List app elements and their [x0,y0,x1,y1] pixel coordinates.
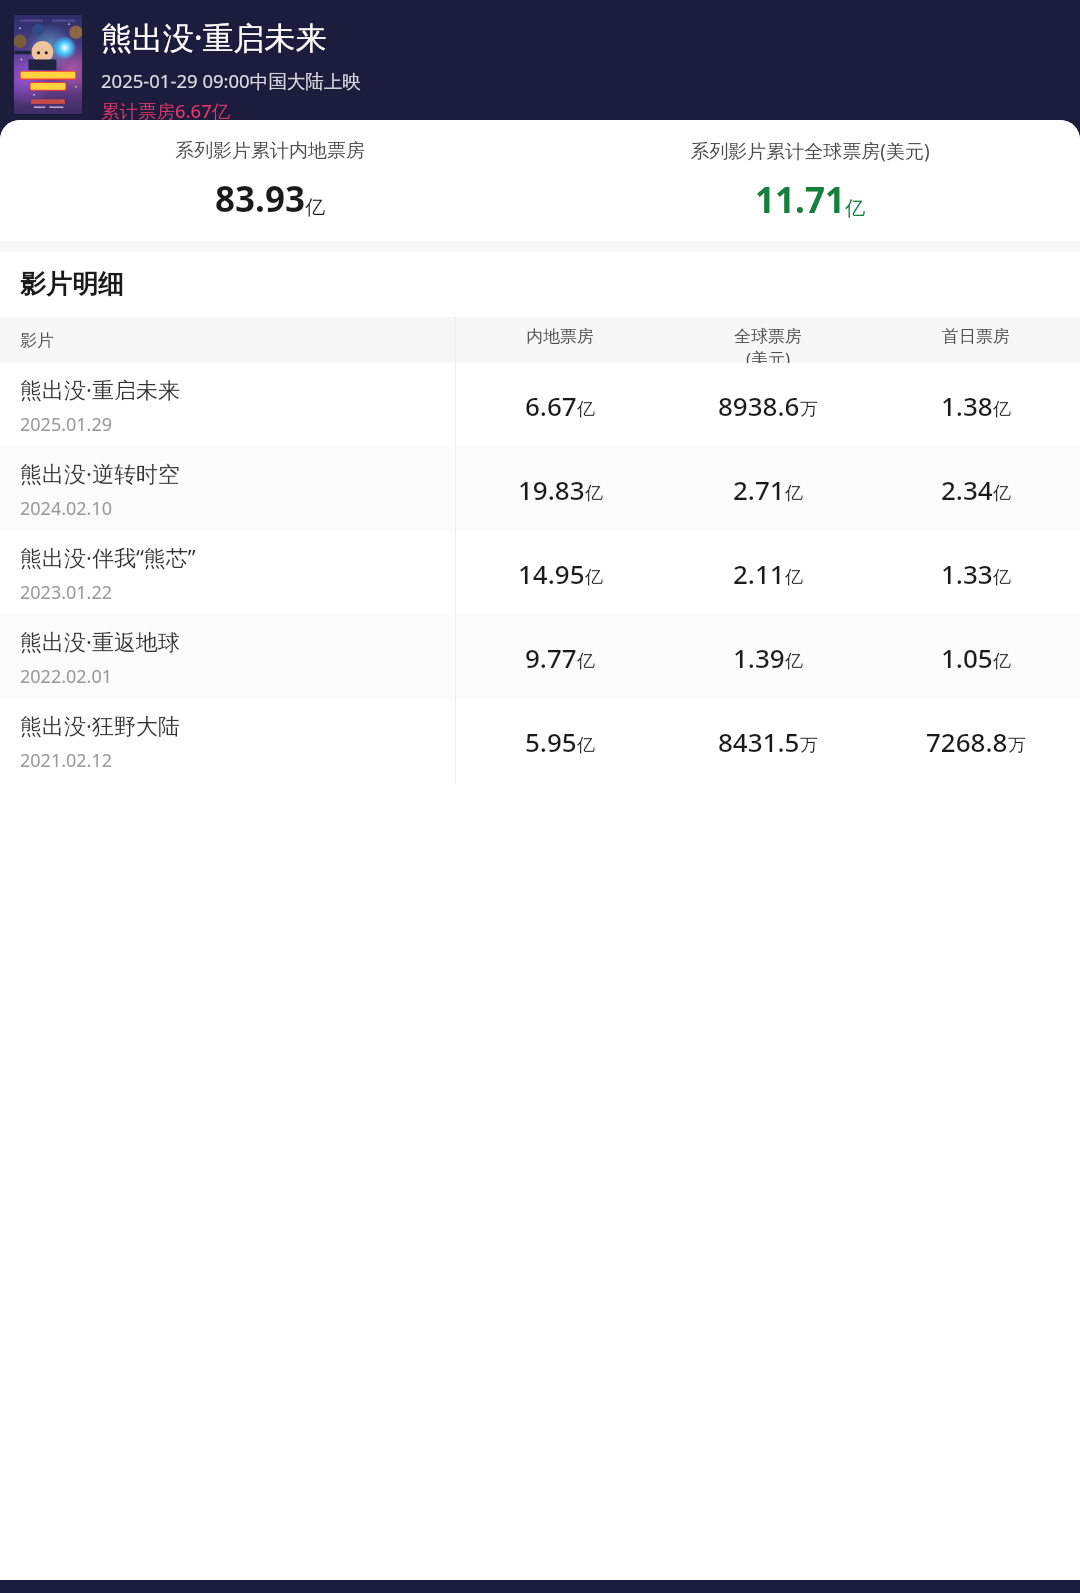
staticText: 2023.01.22 [20,580,113,605]
staticText: 2025-01-29 09:00中国大陆上映 [101,68,361,93]
staticText: 亿 [993,650,1011,673]
staticText: 83.93 [215,175,305,223]
staticText: 累计票房6.67亿 [101,98,231,123]
button[interactable]: 电影海报 [13,14,83,115]
staticText: 1.39 [733,640,785,675]
staticText: 亿 [785,650,803,673]
staticText: 系列影片累计全球票房(美元) [690,138,930,164]
staticText: (美元) [746,347,791,363]
staticText: 万 [800,734,818,757]
staticText: 2025.01.29 [20,412,113,437]
staticText: 亿 [577,398,595,421]
button[interactable]: 熊出没·重启未来 [0,363,1080,447]
staticText: 亿 [785,566,803,589]
staticText: 万 [800,398,818,421]
staticText: 8938.6 [718,388,800,423]
staticText: 熊出没·逆转时空 [20,458,180,488]
staticText: 9.77 [525,640,577,675]
staticText: 亿 [993,482,1011,505]
staticText: 熊出没·重返地球 [20,626,180,656]
button[interactable]: 系列影片累计内地票房 [0,120,540,241]
staticText: 2022.02.01 [20,664,113,689]
staticText: 全球票房 [734,326,802,347]
staticText: 万 [1008,734,1026,757]
staticText: 影片 [20,330,54,351]
button[interactable]: 系列影片累计全球票房(美元) [540,120,1080,241]
staticText: 熊出没·伴我“熊芯” [20,542,196,572]
staticText: 亿 [577,650,595,673]
staticText: 影片明细 [20,268,124,301]
staticText: 14.95 [518,556,585,591]
staticText: 熊出没·重启未来 [101,16,327,58]
staticText: 2021.02.12 [20,748,113,773]
button[interactable]: 熊出没·逆转时空 [0,447,1080,531]
button[interactable]: 熊出没·伴我“熊芯” [0,531,1080,615]
staticText: 2024.02.10 [20,496,113,521]
button[interactable]: 熊出没·重返地球 [0,615,1080,699]
staticText: 亿 [993,398,1011,421]
staticText: 首日票房 [942,326,1010,347]
staticText: 内地票房 [526,326,594,347]
staticText: 19.83 [518,472,585,507]
staticText: 2.34 [941,472,993,507]
staticText: 系列影片累计内地票房 [175,139,365,163]
staticText: 亿 [305,195,325,220]
staticText: 亿 [577,734,595,757]
staticText: 8431.5 [718,724,800,759]
staticText: 6.67 [525,388,577,423]
staticText: 亿 [785,482,803,505]
staticText: 1.38 [941,388,993,423]
staticText: 7268.8 [926,724,1008,759]
staticText: 5.95 [525,724,577,759]
button[interactable]: 电影海报 [0,0,1080,133]
staticText: 熊出没·重启未来 [20,374,180,404]
button[interactable]: 熊出没·狂野大陆 [0,699,1080,783]
staticText: 亿 [585,482,603,505]
staticText: 1.33 [941,556,993,591]
staticText: 亿 [585,566,603,589]
staticText: 2.71 [733,472,785,507]
staticText: 熊出没·狂野大陆 [20,710,180,740]
staticText: 亿 [845,196,865,221]
staticText: 1.05 [941,640,993,675]
staticText: 2.11 [733,556,785,591]
staticText: 亿 [993,566,1011,589]
staticText: 11.71 [755,176,845,224]
